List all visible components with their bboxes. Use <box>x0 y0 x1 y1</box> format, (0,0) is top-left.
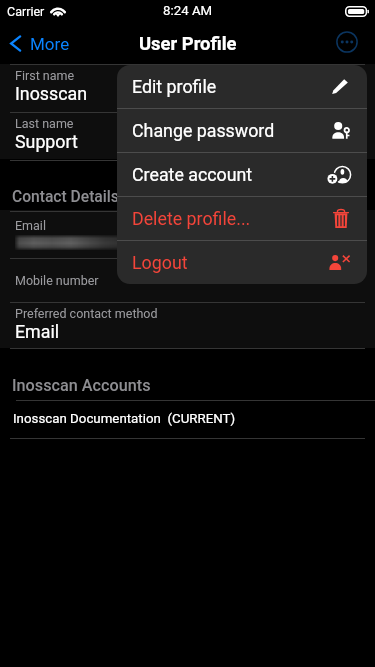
staticText: Create account <box>132 164 328 185</box>
staticText: Edit profile <box>132 76 334 97</box>
button[interactable]: Email <box>0 211 375 258</box>
button[interactable]: Last name <box>0 112 375 160</box>
staticText: Mobile number <box>15 273 99 288</box>
staticText: Logout <box>132 252 329 273</box>
button[interactable]: Logout <box>117 241 367 284</box>
staticText: Change password <box>132 120 332 141</box>
staticText: Delete profile... <box>132 208 334 229</box>
button[interactable]: First name <box>0 64 375 112</box>
button[interactable]: Inosscan Documentation (CURRENT) <box>0 400 375 438</box>
button[interactable]: Edit profile <box>117 65 367 108</box>
staticText: Email <box>15 218 46 233</box>
staticText: Contact Details <box>12 188 119 206</box>
staticText: Inosscan Documentation (CURRENT) <box>13 411 236 427</box>
button[interactable]: More <box>0 29 82 59</box>
button[interactable]: Delete profile... <box>117 197 367 240</box>
staticText: Inosscan <box>15 83 88 104</box>
staticText: Inosscan Accounts <box>12 376 151 395</box>
staticText: More <box>30 34 70 54</box>
staticText: Email <box>15 321 60 342</box>
staticText: Carrier <box>7 4 45 19</box>
button[interactable]: Change password <box>117 109 367 152</box>
button[interactable]: Create account <box>117 153 367 196</box>
button[interactable]: Mobile number <box>0 258 375 302</box>
staticText: User Profile <box>139 33 237 55</box>
staticText: Last name <box>15 116 74 131</box>
button[interactable]: Preferred contact method <box>0 302 375 349</box>
staticText: Support <box>15 131 78 152</box>
button[interactable]: More options <box>336 31 358 53</box>
staticText: Preferred contact method <box>15 306 158 321</box>
staticText: 8:24 AM <box>163 3 213 19</box>
staticText: First name <box>15 68 75 83</box>
